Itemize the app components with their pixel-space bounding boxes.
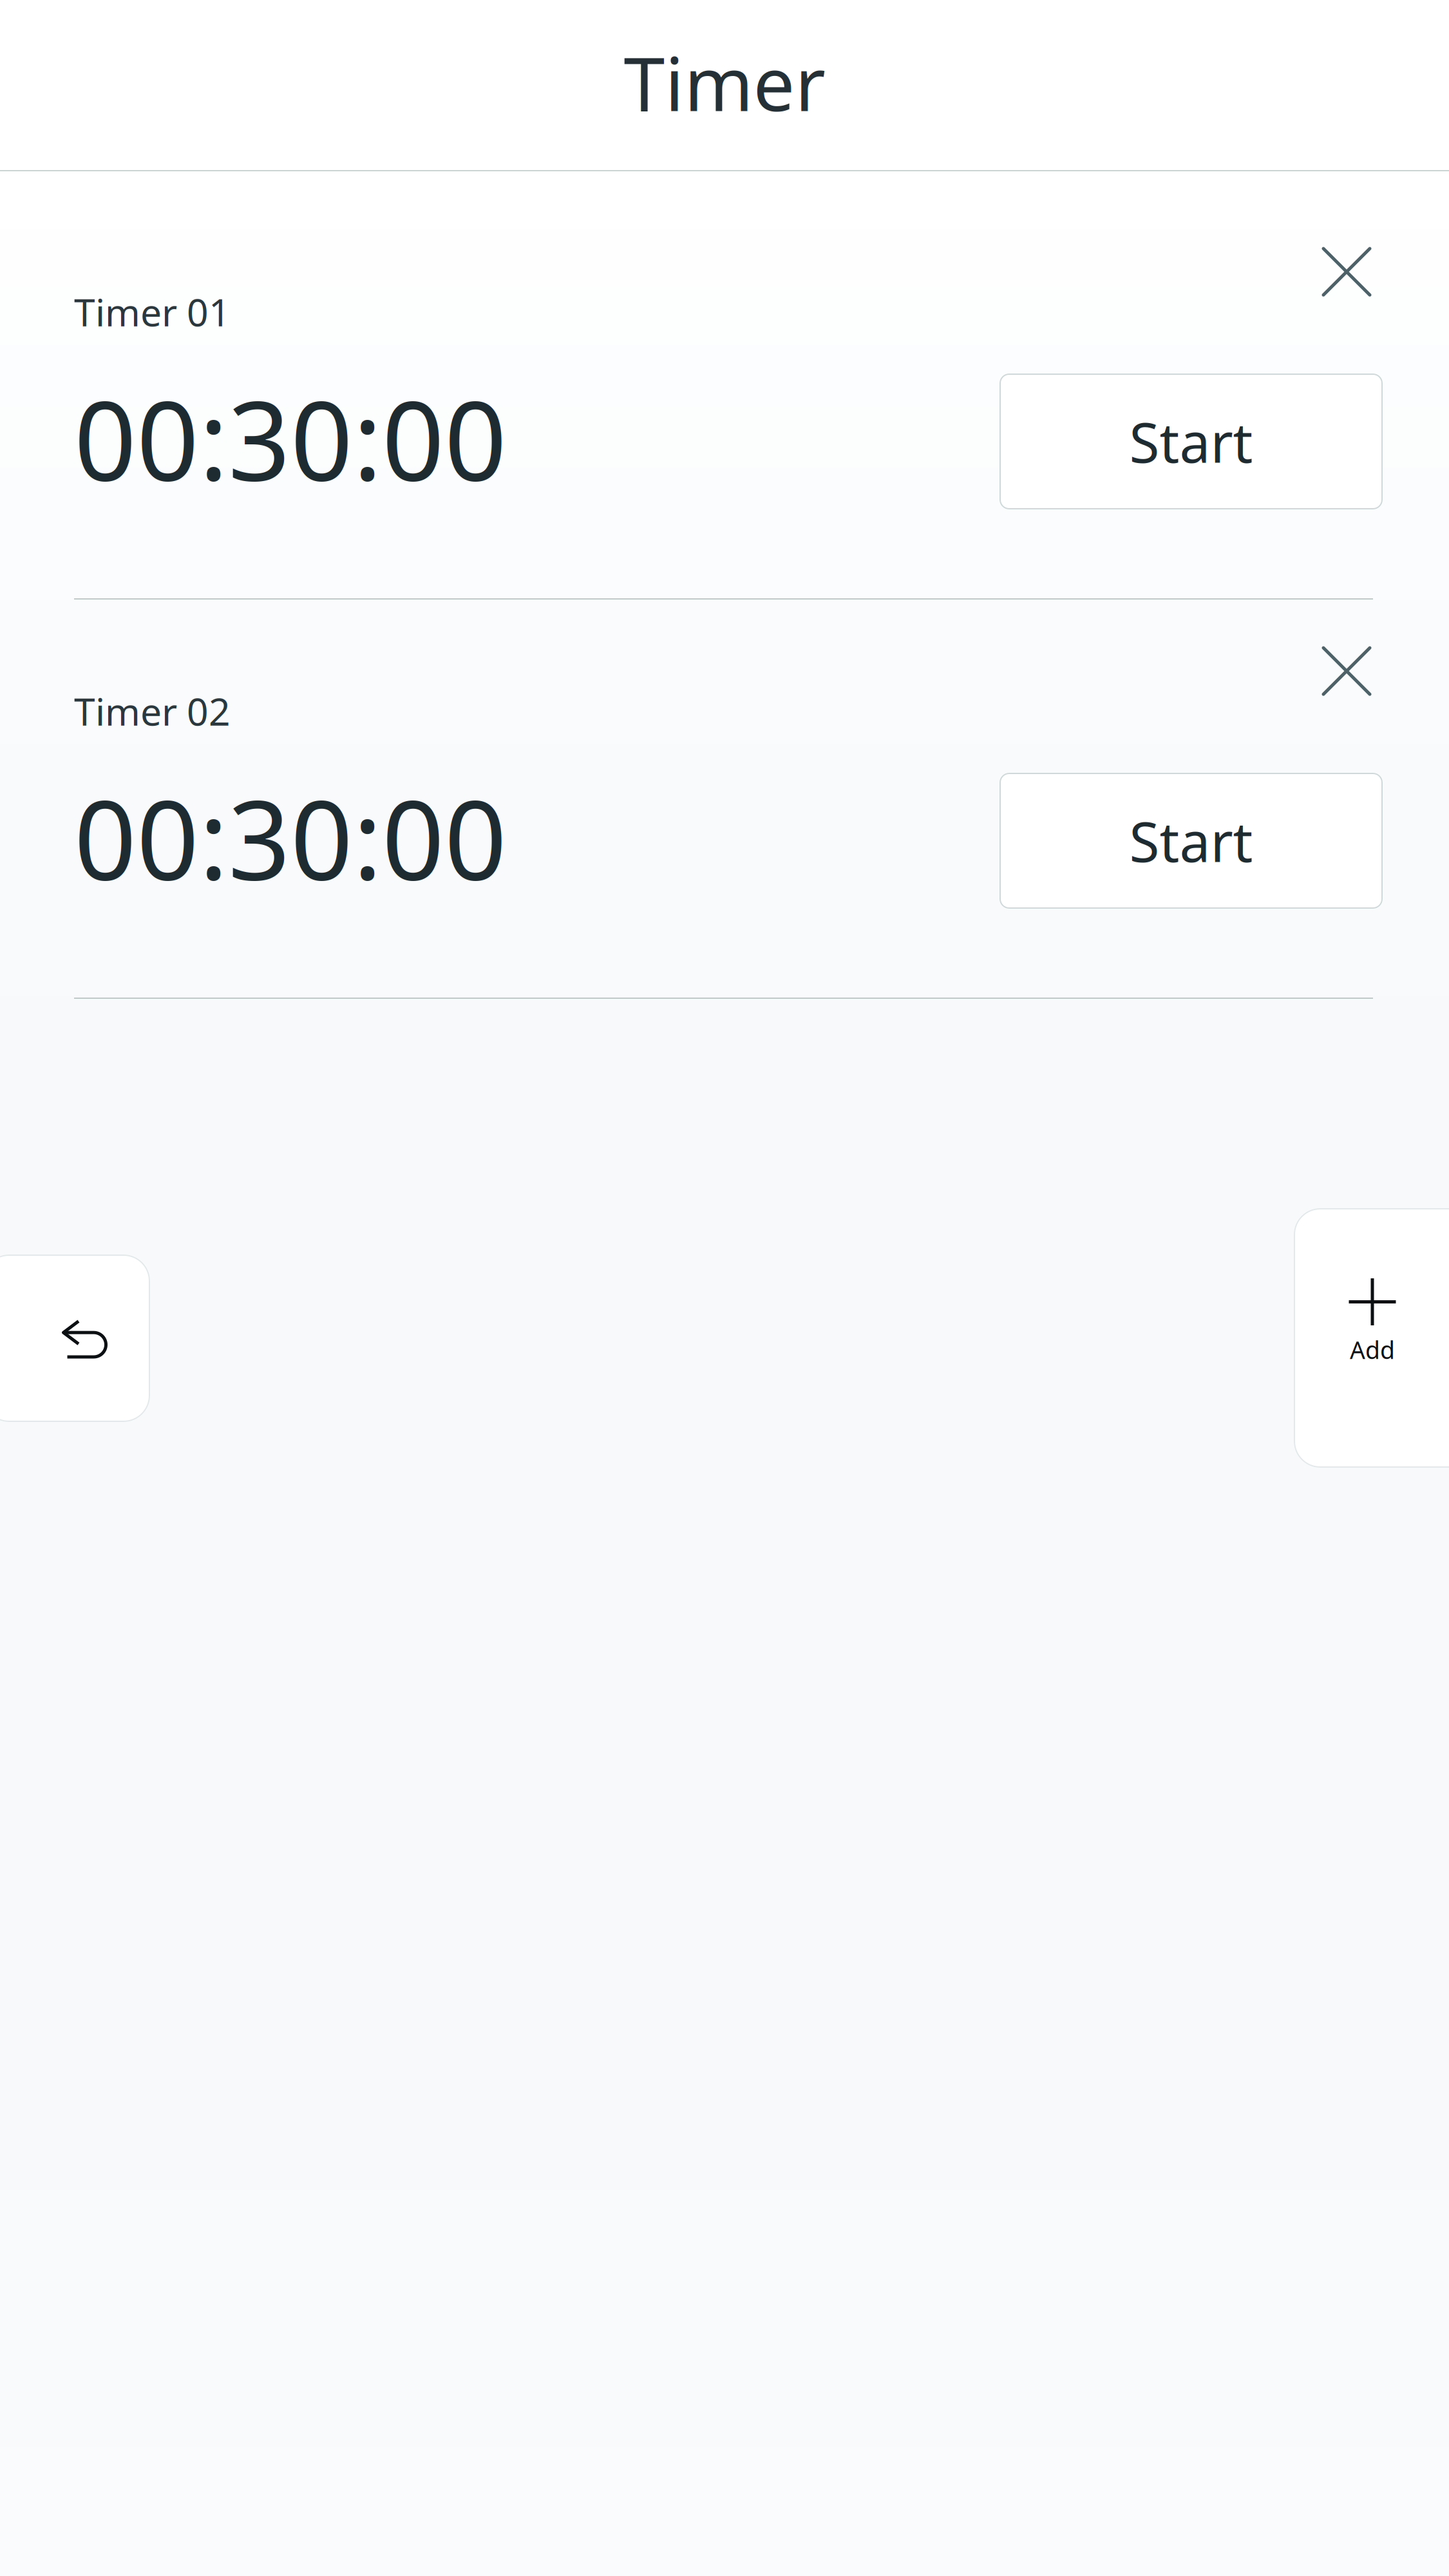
button[interactable]: Delete Timer 02 — [1320, 600, 1373, 743]
staticText: Timer — [624, 33, 825, 132]
button[interactable]: Back — [0, 1255, 150, 1422]
staticText: Add — [1350, 1334, 1395, 1366]
staticText: 00:30:00 — [74, 765, 507, 910]
staticText: Timer 02 — [74, 686, 231, 736]
staticText: 00:30:00 — [74, 366, 507, 511]
button[interactable]: Start — [999, 374, 1383, 509]
button[interactable]: Add — [1294, 1208, 1449, 1468]
button[interactable]: Start — [999, 773, 1383, 909]
staticText: Start — [1129, 804, 1253, 877]
staticText: Start — [1129, 405, 1253, 478]
button[interactable]: Delete Timer 01 — [1320, 200, 1373, 343]
staticText: Timer 01 — [74, 287, 231, 337]
